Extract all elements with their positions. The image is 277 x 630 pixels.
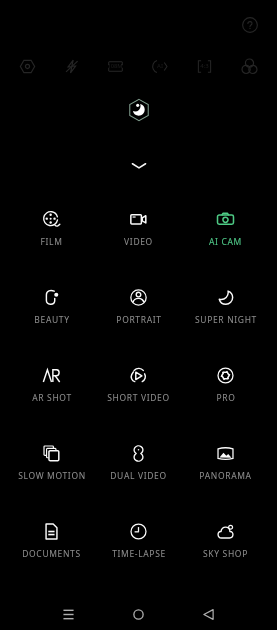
button[interactable]: AI CAM — [182, 197, 269, 248]
staticText: 108M — [107, 62, 123, 70]
button[interactable]: Recent apps — [34, 594, 103, 630]
button[interactable]: BEAUTY — [8, 275, 95, 326]
staticText: BEAUTY — [34, 314, 70, 326]
button[interactable]: Help — [239, 14, 261, 36]
button[interactable]: PANORAMA — [182, 431, 269, 482]
button[interactable]: Collapse — [127, 156, 151, 176]
button[interactable]: Back — [173, 594, 243, 630]
button[interactable]: Aspect ratio 4:3 — [182, 54, 227, 78]
button[interactable]: TIME-LAPSE — [95, 509, 182, 560]
staticText: AI CAM — [209, 236, 242, 248]
staticText: FILM — [40, 236, 63, 248]
staticText: VIDEO — [124, 236, 153, 248]
button[interactable]: DOCUMENTS — [8, 509, 95, 560]
button[interactable]: SKY SHOP — [182, 509, 269, 560]
staticText: 4:3 — [200, 62, 209, 70]
button[interactable]: AR SHOT — [8, 353, 95, 404]
staticText: AI — [157, 62, 163, 70]
staticText: PORTRAIT — [116, 314, 162, 326]
button[interactable]: SHORT VIDEO — [95, 353, 182, 404]
button[interactable]: PORTRAIT — [95, 275, 182, 326]
button[interactable]: DUAL VIDEO — [95, 431, 182, 482]
button[interactable]: Flash off — [49, 54, 93, 78]
button[interactable]: SUPER NIGHT — [182, 275, 269, 326]
button[interactable]: Filters — [5, 54, 49, 78]
staticText: SLOW MOTION — [18, 470, 86, 482]
staticText: DOCUMENTS — [22, 548, 81, 560]
staticText: PRO — [216, 392, 236, 404]
staticText: SKY SHOP — [203, 548, 248, 560]
button[interactable]: Night mode — [124, 95, 154, 125]
button[interactable]: Colour filter — [227, 54, 272, 78]
button[interactable]: AI scene detection — [137, 54, 182, 78]
button[interactable]: VIDEO — [95, 197, 182, 248]
button[interactable]: FILM — [8, 197, 95, 248]
button[interactable]: Resolution 108MP — [93, 54, 137, 78]
button[interactable]: PRO — [182, 353, 269, 404]
staticText: SHORT VIDEO — [107, 392, 170, 404]
staticText: AR SHOT — [32, 392, 72, 404]
staticText: TIME-LAPSE — [112, 548, 166, 560]
staticText: DUAL VIDEO — [110, 470, 167, 482]
staticText: SUPER NIGHT — [195, 314, 257, 326]
button[interactable]: Home — [103, 594, 173, 630]
button[interactable]: SLOW MOTION — [8, 431, 95, 482]
staticText: PANORAMA — [199, 470, 252, 482]
